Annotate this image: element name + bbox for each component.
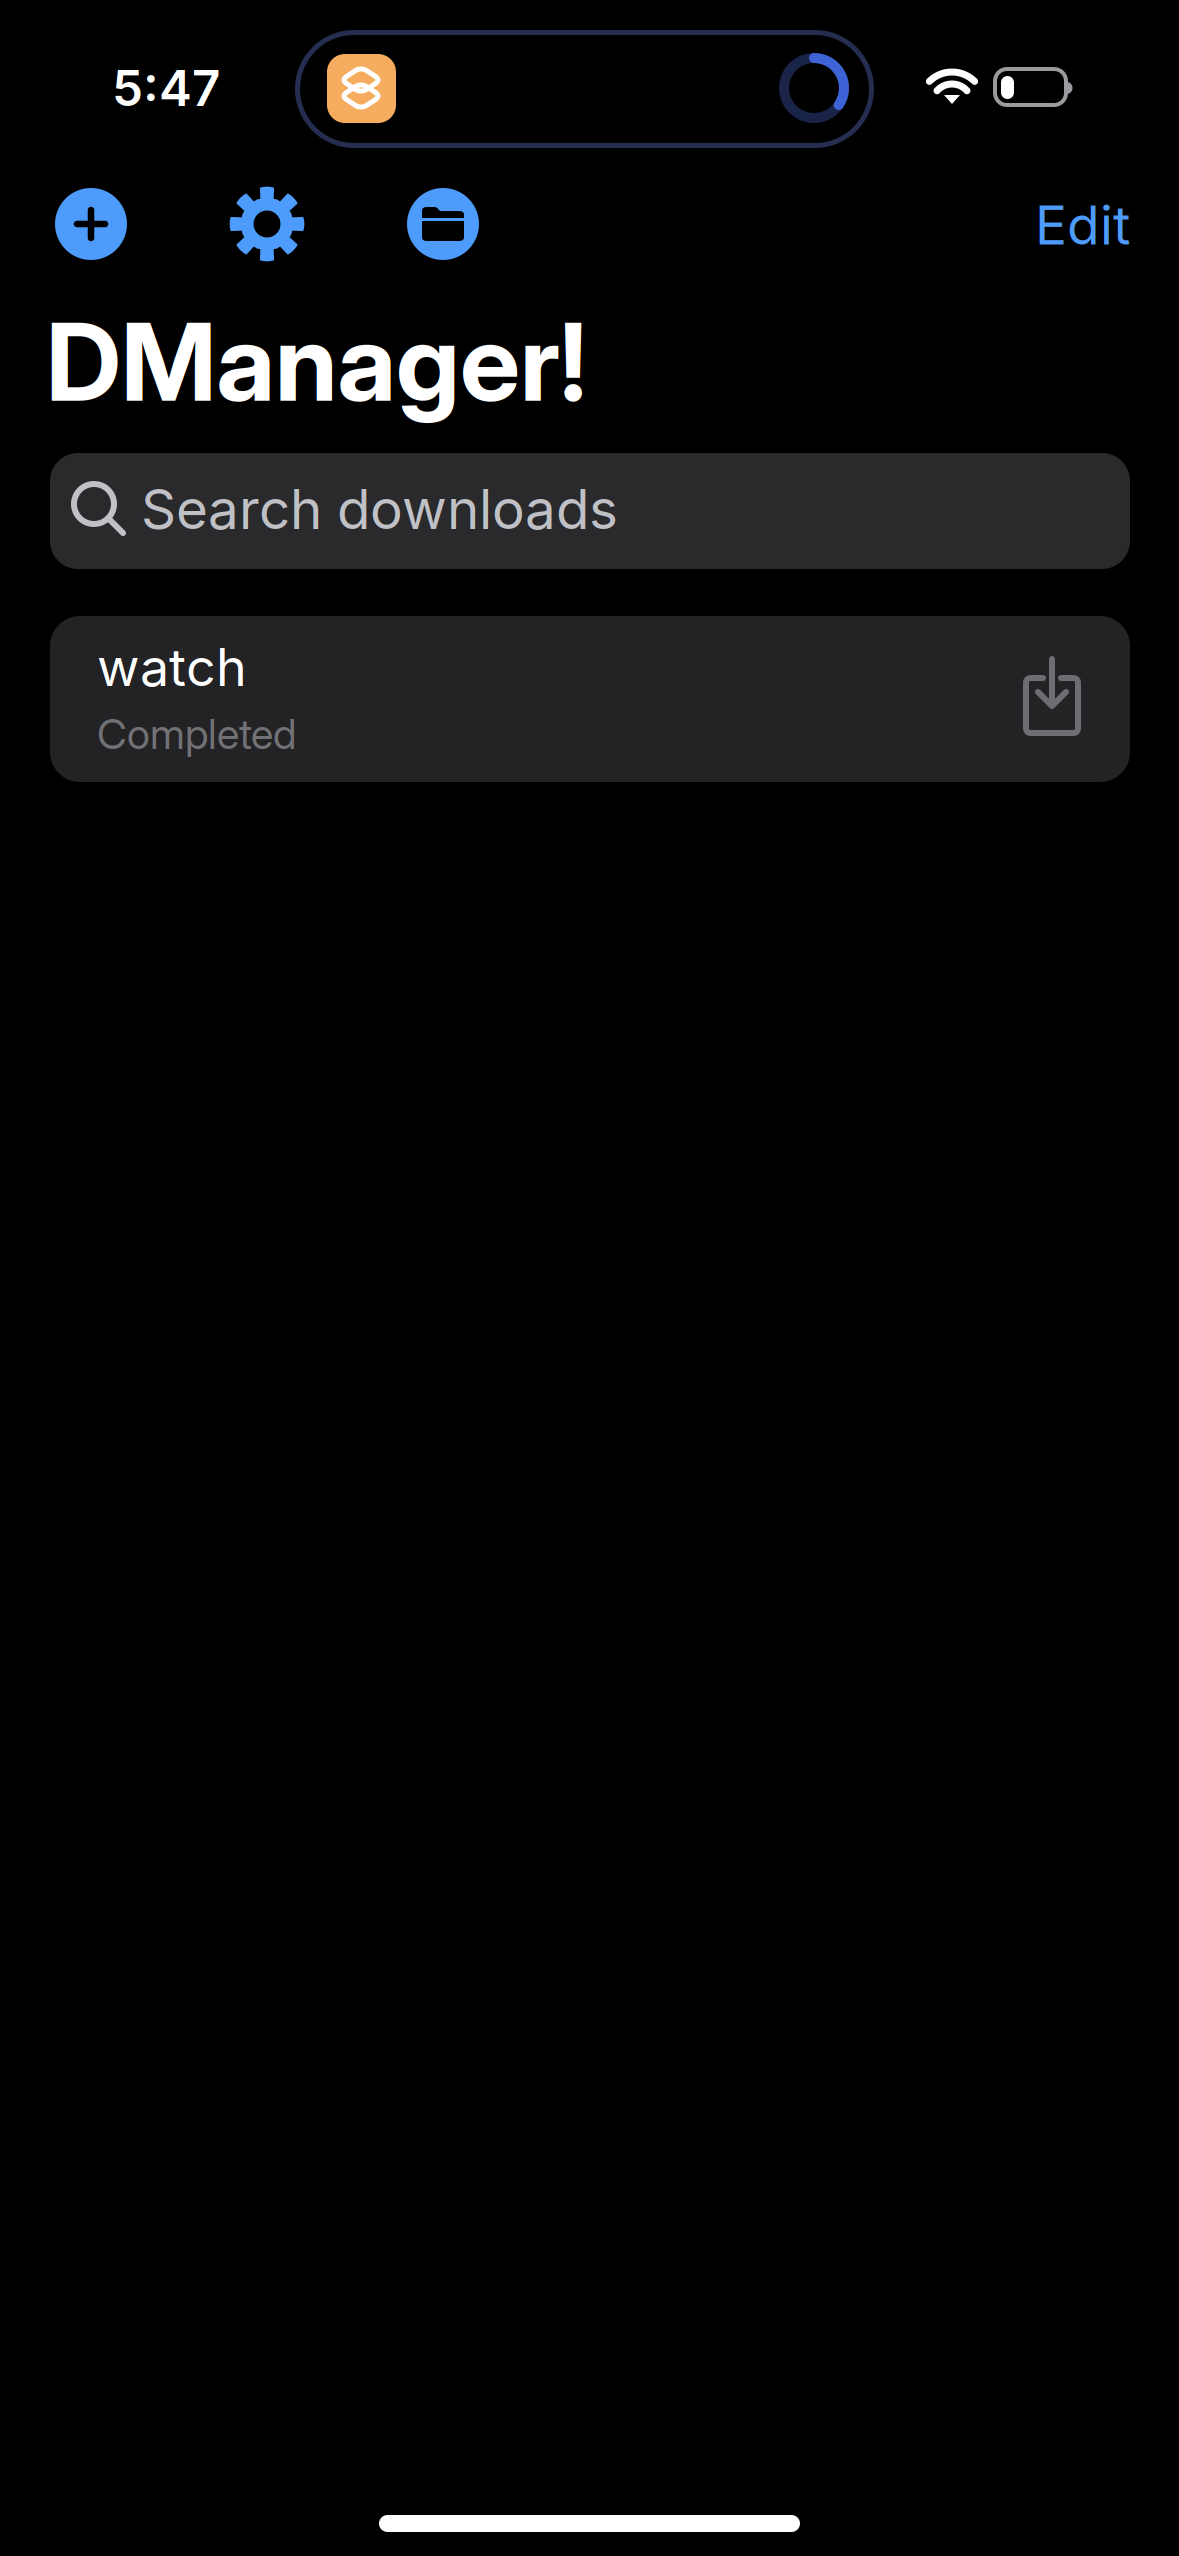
staticText: Edit <box>1035 193 1130 257</box>
staticText: Search downloads <box>141 476 618 542</box>
staticText: 5:47 <box>112 58 220 118</box>
button[interactable]: watch <box>50 616 1130 782</box>
button[interactable]: Edit <box>950 189 1130 261</box>
button[interactable]: Files <box>407 188 479 260</box>
staticText: Completed <box>97 709 296 759</box>
button[interactable]: Settings <box>229 186 305 262</box>
staticText: watch <box>97 635 247 698</box>
button[interactable]: Add download <box>55 188 127 260</box>
button[interactable]: Search downloads <box>50 453 1130 569</box>
staticText: DManager! <box>46 297 586 427</box>
